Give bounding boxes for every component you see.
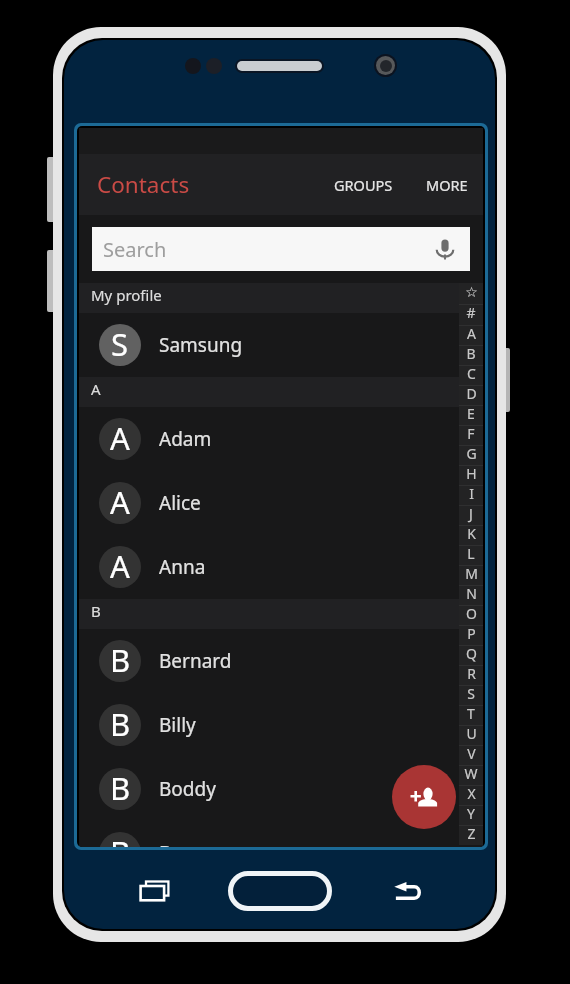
button[interactable]: S — [459, 685, 483, 705]
button[interactable]: # — [459, 304, 483, 325]
button[interactable]: U — [459, 725, 483, 745]
staticText: B — [466, 344, 476, 363]
staticText: O — [466, 604, 477, 623]
button[interactable]: A — [79, 407, 483, 471]
button[interactable]: Home — [228, 871, 332, 911]
button[interactable]: G — [459, 445, 483, 465]
staticText: N — [466, 584, 477, 603]
button[interactable]: Back — [388, 871, 432, 915]
staticText: H — [466, 464, 477, 483]
staticText: Anna — [159, 554, 206, 580]
staticText: # — [466, 303, 476, 322]
staticText: GROUPS — [334, 175, 393, 195]
button[interactable]: B — [79, 629, 483, 693]
staticText: S — [467, 684, 475, 703]
button[interactable]: A — [79, 471, 483, 535]
staticText: Boddy — [159, 776, 216, 802]
button[interactable]: Search — [92, 227, 470, 271]
button[interactable]: Contacts — [91, 161, 196, 208]
staticText: U — [466, 724, 477, 743]
button[interactable]: M — [459, 565, 483, 585]
staticText: Alice — [159, 490, 201, 516]
button[interactable]: Z — [459, 825, 483, 845]
staticText: V — [467, 744, 476, 763]
button[interactable]: A — [459, 325, 483, 345]
button[interactable]: I — [459, 485, 483, 505]
staticText: A — [110, 546, 130, 587]
button[interactable]: B — [79, 757, 483, 821]
button[interactable]: V — [459, 745, 483, 765]
staticText: B — [110, 704, 131, 745]
button[interactable]: Add contact — [392, 765, 456, 829]
staticText: A — [110, 418, 130, 459]
button[interactable]: ☆ — [459, 283, 483, 304]
button[interactable]: Q — [459, 645, 483, 665]
staticText: D — [466, 384, 477, 403]
button[interactable]: O — [459, 605, 483, 625]
button[interactable]: MORE — [420, 167, 474, 203]
staticText: X — [467, 784, 476, 803]
staticText: Search — [103, 236, 167, 263]
button[interactable]: Recents — [133, 873, 177, 917]
staticText: Q — [466, 644, 477, 663]
button[interactable]: F — [459, 425, 483, 445]
button[interactable]: T — [459, 705, 483, 725]
staticText: B — [110, 832, 131, 847]
staticText: F — [467, 424, 475, 443]
staticText: Billy — [159, 712, 196, 738]
button[interactable]: B — [79, 693, 483, 757]
button[interactable]: A — [79, 535, 483, 599]
button[interactable]: N — [459, 585, 483, 605]
button[interactable]: E — [459, 405, 483, 425]
button[interactable]: X — [459, 785, 483, 805]
staticText: Bernard — [159, 648, 232, 674]
button[interactable]: B — [459, 345, 483, 365]
staticText: S — [111, 324, 129, 365]
staticText: P — [467, 624, 476, 643]
staticText: Contacts — [97, 169, 190, 200]
staticText: J — [469, 504, 473, 523]
staticText: L — [467, 544, 475, 563]
button[interactable]: D — [459, 385, 483, 405]
staticText: W — [464, 764, 478, 783]
staticText: B — [110, 640, 131, 681]
button[interactable]: B — [79, 821, 483, 847]
staticText: My profile — [91, 285, 162, 305]
staticText: A — [467, 324, 476, 343]
button[interactable]: C — [459, 365, 483, 385]
button[interactable]: S — [79, 313, 483, 377]
staticText: ☆ — [465, 284, 478, 300]
staticText: C — [467, 364, 476, 383]
button[interactable]: P — [459, 625, 483, 645]
staticText: Y — [467, 804, 475, 823]
staticText: R — [467, 664, 476, 683]
button[interactable]: W — [459, 765, 483, 785]
button[interactable]: R — [459, 665, 483, 685]
button[interactable]: J — [459, 505, 483, 525]
staticText: Samsung — [159, 332, 243, 358]
staticText: G — [466, 444, 477, 463]
staticText: Adam — [159, 426, 212, 452]
button[interactable]: GROUPS — [328, 167, 399, 203]
button[interactable]: H — [459, 465, 483, 485]
staticText: T — [467, 704, 475, 723]
staticText: MORE — [426, 175, 468, 195]
staticText: Z — [467, 824, 476, 843]
staticText: E — [467, 404, 475, 423]
button[interactable]: Y — [459, 805, 483, 825]
staticText: A — [110, 482, 130, 523]
staticText: B — [91, 601, 101, 621]
staticText: B — [110, 768, 131, 809]
staticText: A — [91, 379, 101, 399]
button[interactable]: L — [459, 545, 483, 565]
staticText: Bruce — [159, 840, 211, 847]
button[interactable]: K — [459, 525, 483, 545]
staticText: K — [467, 524, 476, 543]
staticText: M — [465, 564, 478, 583]
staticText: I — [469, 484, 474, 503]
